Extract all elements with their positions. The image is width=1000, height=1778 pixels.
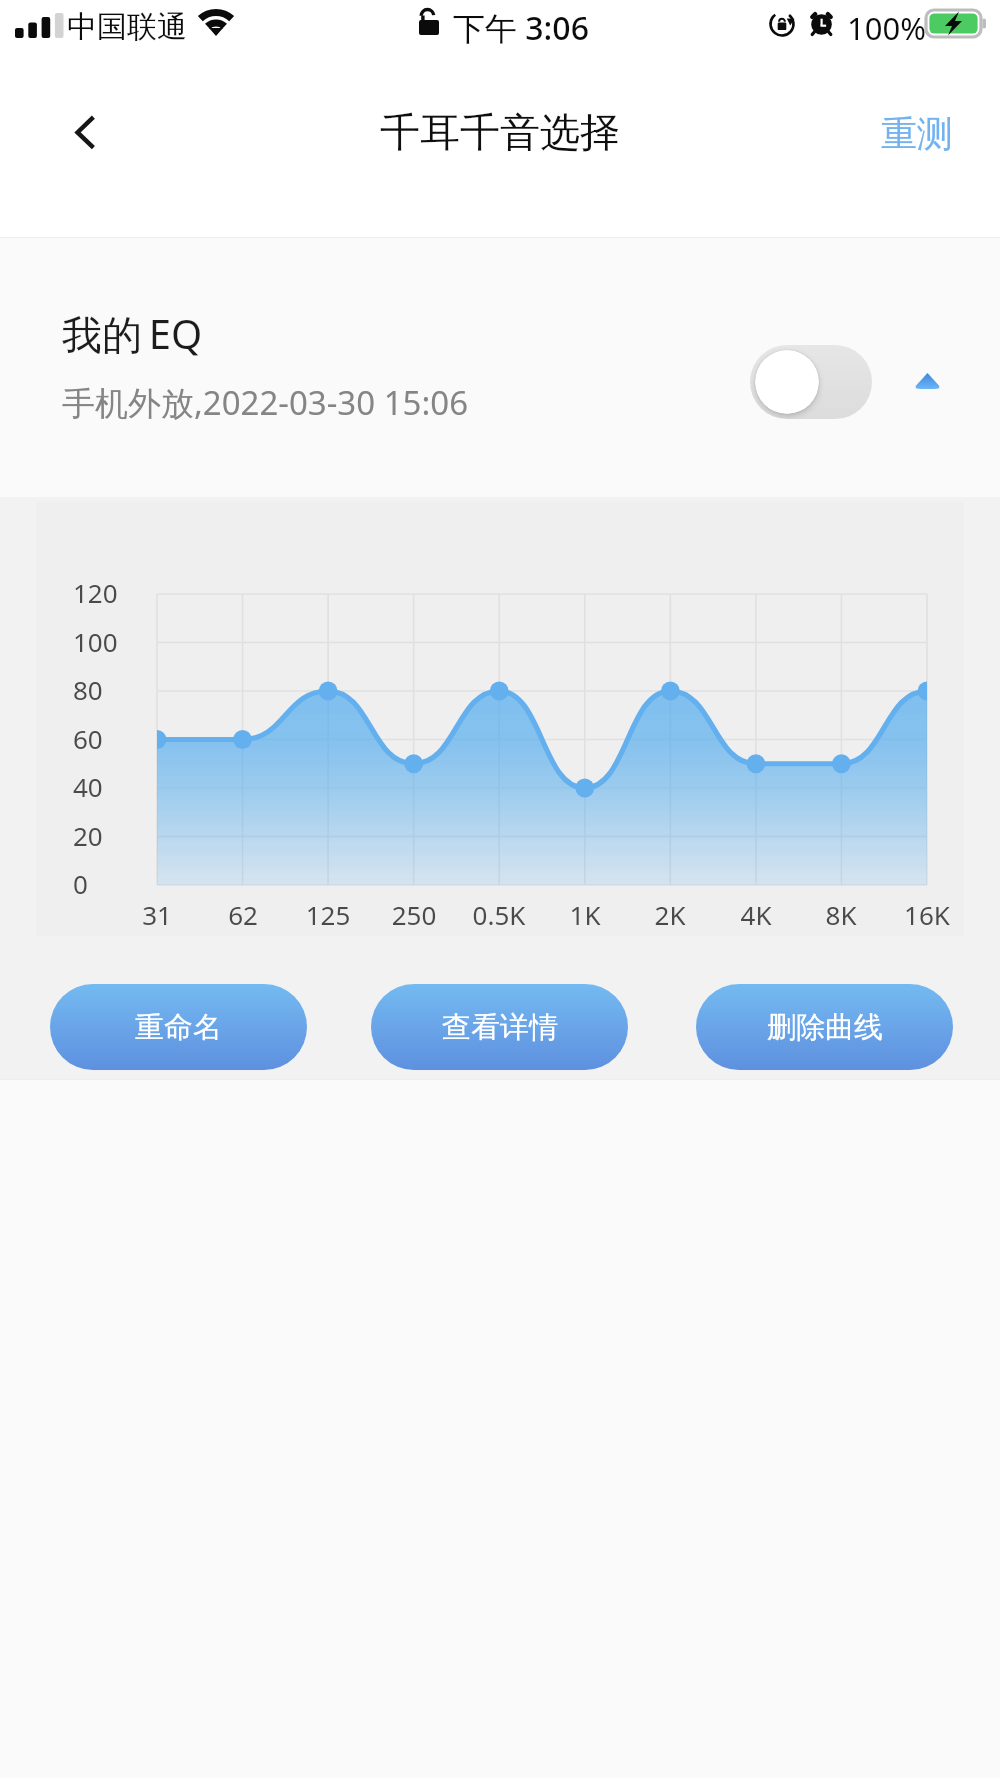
staticText: 我的 EQ <box>62 306 203 361</box>
staticText: 16K <box>882 897 972 932</box>
staticText: 手机外放,2022-03-30 15:06 <box>62 380 469 425</box>
staticText: 下午 3:06 <box>453 6 589 50</box>
button[interactable]: 删除曲线 <box>696 984 953 1070</box>
staticText: 千耳千音选择 <box>380 107 620 157</box>
staticText: 2K <box>625 897 715 932</box>
staticText: 40 <box>73 769 163 804</box>
staticText: 重测 <box>881 111 953 156</box>
staticText: 120 <box>73 575 163 610</box>
staticText: 重命名 <box>135 1009 222 1046</box>
staticText: 125 <box>283 897 373 932</box>
button[interactable]: 重命名 <box>50 984 307 1070</box>
staticText: 1K <box>540 897 630 932</box>
staticText: 删除曲线 <box>767 1009 883 1046</box>
staticText: 100% <box>847 7 926 49</box>
staticText: 8K <box>796 897 886 932</box>
button[interactable]: 查看详情 <box>371 984 628 1070</box>
button[interactable]: Back <box>37 92 133 188</box>
staticText: 250 <box>369 897 459 932</box>
button[interactable]: Collapse <box>894 349 960 413</box>
staticText: 60 <box>73 721 163 756</box>
staticText: 0 <box>73 866 163 901</box>
staticText: 100 <box>73 624 163 659</box>
button[interactable]: Enable EQ <box>750 345 872 419</box>
staticText: 查看详情 <box>442 1009 558 1046</box>
staticText: 62 <box>198 897 288 932</box>
button[interactable]: 重测 <box>857 97 977 170</box>
staticText: 0.5K <box>454 897 544 932</box>
staticText: 31 <box>112 897 202 932</box>
staticText: 中国联通 <box>67 8 187 46</box>
staticText: 4K <box>711 897 801 932</box>
staticText: 20 <box>73 818 163 853</box>
staticText: 80 <box>73 672 163 707</box>
